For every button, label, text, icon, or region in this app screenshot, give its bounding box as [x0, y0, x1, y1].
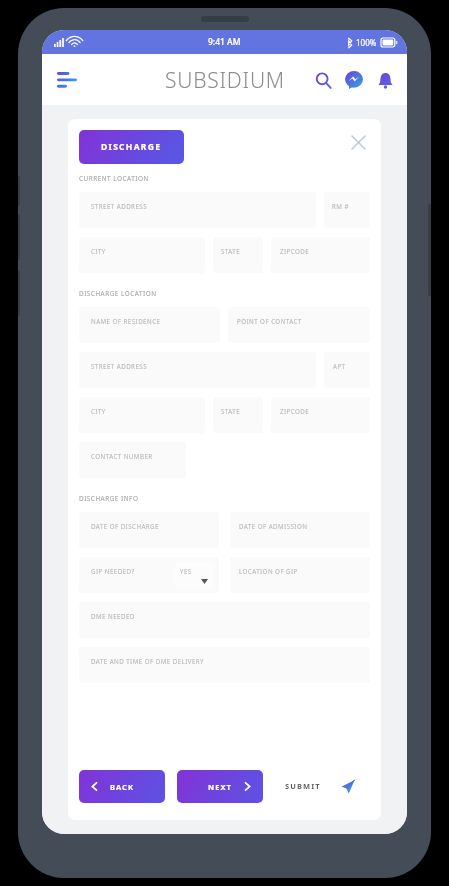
staticText: SUBSIDIUM	[165, 66, 285, 95]
button[interactable]: Messages	[340, 66, 368, 94]
staticText: NEXT	[198, 782, 242, 792]
staticText: RM #	[332, 202, 349, 210]
button[interactable]: STATE	[213, 237, 263, 273]
button[interactable]: GIP NEEDED?	[79, 557, 219, 593]
staticText: STATE	[221, 247, 241, 255]
button[interactable]: STREET ADDRESS	[79, 192, 316, 228]
staticText: ZIPCODE	[280, 247, 310, 255]
button[interactable]: CITY	[79, 397, 205, 433]
button[interactable]: DISCHARGE	[79, 130, 184, 164]
staticText: CURRENT LOCATION	[79, 174, 149, 183]
button[interactable]: NEXT	[177, 770, 263, 803]
button[interactable]: APT	[324, 352, 370, 388]
staticText: GIP NEEDED?	[91, 567, 135, 575]
staticText: DISCHARGE LOCATION	[79, 289, 157, 298]
staticText: DME NEEDED	[91, 612, 135, 620]
staticText: POINT OF CONTACT	[237, 317, 302, 325]
staticText: NAME OF RESIDENCE	[91, 317, 161, 325]
button[interactable]: STREET ADDRESS	[79, 352, 316, 388]
staticText: STREET ADDRESS	[91, 202, 147, 210]
button[interactable]: STATE	[213, 397, 263, 433]
staticText: STATE	[221, 407, 241, 415]
staticText: CITY	[91, 407, 106, 415]
button[interactable]: BACK	[79, 770, 165, 803]
button[interactable]: NAME OF RESIDENCE	[79, 307, 220, 343]
button[interactable]: ZIPCODE	[271, 237, 370, 273]
staticText: CITY	[91, 247, 106, 255]
staticText: APT	[333, 362, 346, 370]
button[interactable]: DATE AND TIME OF DME DELIVERY	[79, 647, 370, 683]
staticText: DISCHARGE INFO	[79, 494, 139, 503]
button[interactable]: POINT OF CONTACT	[228, 307, 370, 343]
staticText: DATE AND TIME OF DME DELIVERY	[91, 657, 205, 665]
button[interactable]: DATE OF DISCHARGE	[79, 512, 219, 548]
button[interactable]: DATE OF ADMISSION	[230, 512, 370, 548]
button[interactable]: Menu	[50, 63, 84, 97]
staticText: STREET ADDRESS	[91, 362, 147, 370]
staticText: DATE OF ADMISSION	[239, 522, 308, 530]
staticText: DISCHARGE	[101, 141, 162, 153]
button[interactable]: Close	[346, 130, 370, 154]
staticText: 9:41 AM	[208, 36, 241, 48]
staticText: 100%	[356, 37, 377, 48]
button[interactable]: ZIPCODE	[271, 397, 370, 433]
staticText: SUBMIT	[285, 781, 321, 791]
staticText: DATE OF DISCHARGE	[91, 522, 159, 530]
button[interactable]: CONTACT NUMBER	[79, 442, 186, 478]
button[interactable]: CITY	[79, 237, 205, 273]
button[interactable]: LOCATION OF GIP	[230, 557, 370, 593]
button[interactable]: YES	[175, 562, 213, 589]
staticText: CONTACT NUMBER	[91, 452, 153, 460]
staticText: ZIPCODE	[280, 407, 310, 415]
button[interactable]: SUBMIT	[275, 768, 365, 804]
button[interactable]: RM #	[324, 192, 370, 228]
button[interactable]: Notifications	[371, 66, 399, 94]
staticText: YES	[180, 567, 192, 575]
button[interactable]: DME NEEDED	[79, 602, 370, 638]
staticText: BACK	[100, 782, 144, 792]
button[interactable]: Search	[309, 66, 337, 94]
staticText: LOCATION OF GIP	[239, 567, 298, 575]
